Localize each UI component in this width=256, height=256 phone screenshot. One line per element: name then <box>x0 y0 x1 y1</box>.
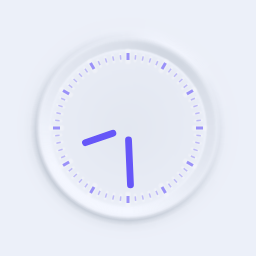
button[interactable]: Neumorphic analog clock <box>0 0 256 256</box>
